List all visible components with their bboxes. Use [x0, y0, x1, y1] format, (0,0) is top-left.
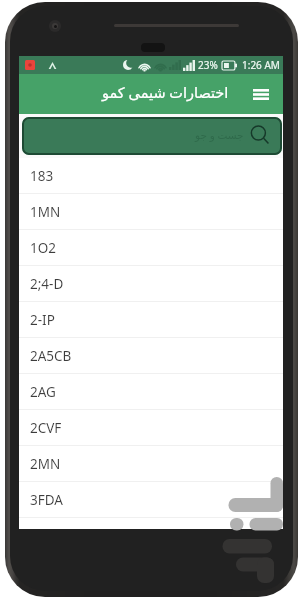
staticText: 2CVF [30, 419, 62, 437]
staticText: اختصارات شیمی کمو [102, 82, 229, 102]
button[interactable]: Menu [249, 82, 273, 106]
button[interactable]: 2-IP [19, 302, 283, 338]
staticText: 2AG [30, 383, 56, 401]
button[interactable]: 2AG [19, 374, 283, 410]
staticText: 1:26 AM [242, 58, 280, 72]
staticText: جست و جو [195, 128, 244, 142]
staticText: 23% [198, 58, 218, 72]
staticText: 2A5CB [30, 347, 72, 365]
staticText: 2;4-D [30, 275, 64, 293]
staticText: 2-IP [30, 311, 55, 329]
button[interactable]: 183 [19, 158, 283, 194]
button[interactable]: 2A5CB [19, 338, 283, 374]
staticText: 3FDA [30, 491, 63, 509]
button[interactable]: 1MN [19, 194, 283, 230]
button[interactable]: 3FDA [19, 482, 283, 518]
button[interactable]: 1O2 [19, 230, 283, 266]
button[interactable]: 2CVF [19, 410, 283, 446]
button[interactable]: 2MN [19, 446, 283, 482]
staticText: 183 [30, 167, 54, 185]
staticText: 1MN [30, 203, 61, 221]
button[interactable]: جست و جو [22, 117, 282, 155]
button[interactable]: 2;4-D [19, 266, 283, 302]
staticText: 2MN [30, 455, 61, 473]
staticText: 1O2 [30, 239, 56, 257]
